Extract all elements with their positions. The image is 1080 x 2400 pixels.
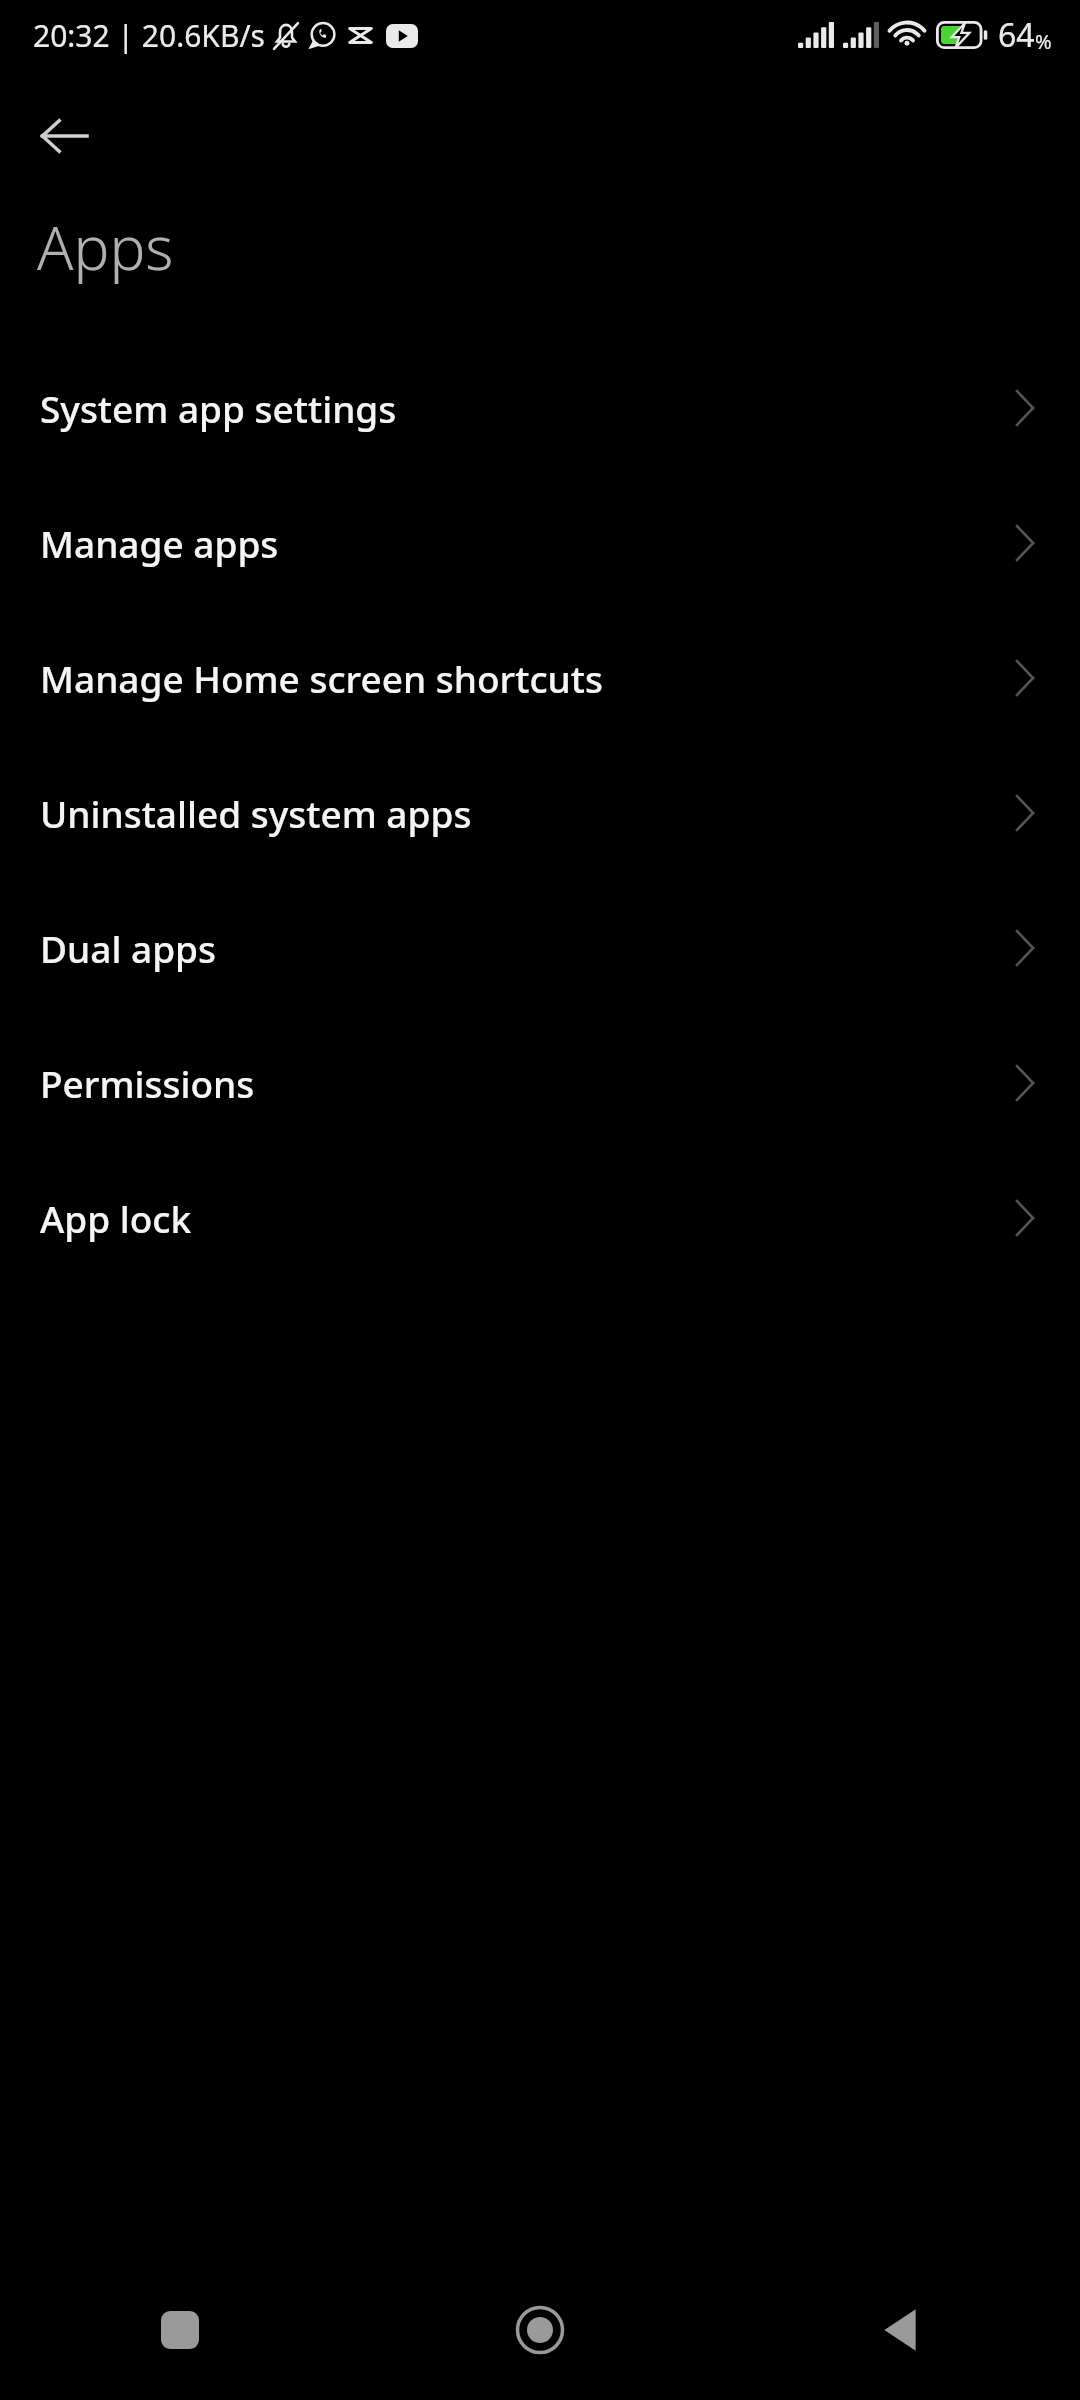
button[interactable]: Manage Home screen shortcuts [0, 610, 1080, 745]
button[interactable]: Permissions [0, 1015, 1080, 1150]
staticText: 64 [998, 13, 1035, 57]
staticText: Manage apps [40, 518, 279, 568]
staticText: Apps [37, 206, 174, 288]
staticText: Manage Home screen shortcuts [40, 653, 603, 703]
button[interactable]: Recents [0, 2260, 360, 2400]
staticText: System app settings [40, 383, 397, 433]
button[interactable]: Dual apps [0, 880, 1080, 1015]
button[interactable]: Back [20, 92, 108, 180]
button[interactable]: Manage apps [0, 475, 1080, 610]
button[interactable]: Home [360, 2260, 720, 2400]
staticText: % [1035, 28, 1052, 55]
button[interactable]: Uninstalled system apps [0, 745, 1080, 880]
staticText: 20:32 | 20.6KB/s [33, 15, 265, 56]
button[interactable]: App lock [0, 1150, 1080, 1285]
staticText: Permissions [40, 1058, 255, 1108]
staticText: App lock [40, 1193, 192, 1243]
button[interactable]: Back [720, 2260, 1080, 2400]
staticText: Dual apps [40, 923, 217, 973]
button[interactable]: System app settings [0, 340, 1080, 475]
staticText: Uninstalled system apps [40, 788, 472, 838]
